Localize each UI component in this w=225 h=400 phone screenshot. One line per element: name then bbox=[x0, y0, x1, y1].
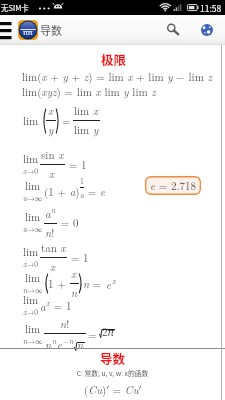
staticText: (Cu)′ = Cu′ bbox=[84, 382, 142, 398]
staticText: lim y bbox=[74, 122, 99, 138]
staticText: = 1 bbox=[67, 250, 89, 266]
staticText: x bbox=[48, 103, 54, 119]
staticText: −n bbox=[63, 335, 74, 346]
staticText: 1 bbox=[80, 175, 84, 186]
staticText: x→0 bbox=[23, 258, 39, 269]
staticText: x bbox=[112, 275, 116, 286]
staticText: lim bbox=[25, 321, 41, 337]
staticText: n bbox=[51, 204, 56, 215]
staticText: lim bbox=[23, 113, 39, 129]
staticText: 导数 bbox=[100, 349, 126, 367]
staticText: a bbox=[80, 189, 84, 200]
staticText: lim(xyz) = lim x lim y lim z bbox=[22, 84, 156, 100]
staticText: x bbox=[49, 166, 55, 182]
staticText: 极限 bbox=[101, 50, 127, 68]
staticText: lim(x + y + z) = lim x + lim y − lim z bbox=[22, 69, 212, 85]
staticText: lim bbox=[23, 151, 39, 167]
staticText: lim bbox=[25, 178, 41, 194]
button[interactable]: 菜单 bbox=[0, 15, 14, 44]
staticText: lim bbox=[25, 209, 41, 225]
staticText: 11:58 bbox=[200, 2, 222, 14]
staticText: x bbox=[50, 259, 56, 275]
staticText: n bbox=[77, 337, 84, 353]
staticText: e bbox=[106, 277, 112, 293]
staticText: n→∞ bbox=[23, 284, 43, 295]
staticText: n bbox=[71, 285, 78, 301]
button[interactable]: ππ bbox=[18, 15, 62, 44]
staticText: n bbox=[52, 335, 57, 346]
staticText: a bbox=[45, 206, 51, 222]
staticText: n→∞ bbox=[23, 335, 43, 346]
staticText: e bbox=[57, 337, 63, 353]
staticText: lim bbox=[23, 292, 39, 308]
staticText: n = bbox=[83, 276, 106, 292]
staticText: = 0 bbox=[57, 215, 79, 231]
staticText: x bbox=[71, 266, 77, 282]
staticText: = bbox=[62, 113, 71, 129]
staticText: sin x bbox=[41, 147, 64, 163]
staticText: x→0 bbox=[23, 165, 39, 176]
staticText: n! bbox=[60, 316, 70, 332]
staticText: lim bbox=[25, 270, 41, 286]
staticText: 无SIM卡 bbox=[1, 2, 29, 13]
staticText: (1 + a) bbox=[44, 184, 80, 200]
staticText: n bbox=[45, 337, 52, 353]
staticText: C: 常数; u, v, w: x的函数 bbox=[0, 368, 225, 378]
staticText: 1 + bbox=[48, 276, 70, 292]
staticText: = e bbox=[84, 184, 105, 200]
staticText: = 1 bbox=[65, 157, 87, 173]
button[interactable]: e = 2.718 bbox=[145, 176, 201, 195]
staticText: 导数 bbox=[40, 22, 62, 38]
staticText: lim x bbox=[74, 103, 99, 119]
staticText: n! bbox=[45, 225, 55, 241]
button[interactable]: 搜索 bbox=[162, 15, 184, 44]
staticText: lim bbox=[23, 244, 39, 260]
staticText: e = 2.718 bbox=[150, 178, 197, 194]
staticText: a→∞ bbox=[23, 223, 43, 234]
staticText: tan x bbox=[41, 240, 66, 256]
staticText: ππ bbox=[23, 27, 33, 37]
staticText: y bbox=[48, 122, 54, 138]
staticText: 2π bbox=[102, 324, 114, 340]
button[interactable]: 网页 bbox=[195, 15, 219, 44]
staticText: a→∞ bbox=[23, 192, 43, 203]
staticText: x bbox=[46, 297, 50, 308]
staticText: = 1 bbox=[50, 298, 72, 314]
staticText: = bbox=[88, 327, 97, 343]
staticText: a bbox=[40, 299, 46, 315]
staticText: x→0 bbox=[23, 306, 39, 317]
